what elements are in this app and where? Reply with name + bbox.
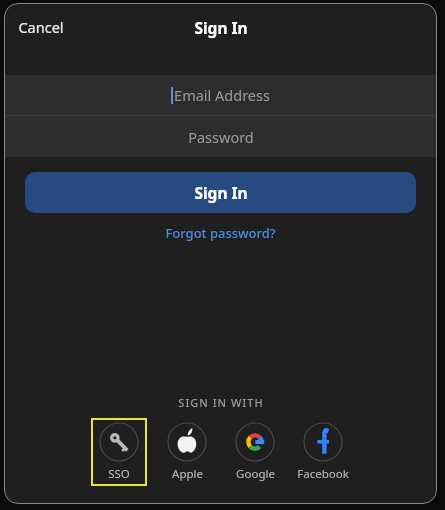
button[interactable]: Sign in with Google <box>227 418 283 486</box>
staticText: Sign In <box>194 182 248 203</box>
staticText: Google <box>236 466 275 482</box>
staticText: SIGN IN WITH <box>178 395 264 410</box>
button[interactable]: Password <box>4 116 437 157</box>
button[interactable]: Forgot password? <box>157 221 284 245</box>
staticText: Facebook <box>297 466 349 482</box>
staticText: Apple <box>172 466 203 482</box>
staticText: Cancel <box>18 17 64 37</box>
button[interactable]: Sign in with Facebook <box>295 418 351 486</box>
button[interactable]: Sign In <box>25 172 416 213</box>
staticText: Email Address <box>174 85 270 105</box>
staticText: SSO <box>108 466 130 482</box>
button[interactable]: Cancel <box>10 13 72 41</box>
button[interactable]: Sign in with Apple <box>159 418 215 486</box>
staticText: Sign In <box>194 17 248 38</box>
button[interactable]: Sign in with SSO <box>91 418 147 486</box>
button[interactable]: Email Address <box>4 75 437 115</box>
staticText: Password <box>188 127 254 147</box>
staticText: Forgot password? <box>165 224 276 242</box>
